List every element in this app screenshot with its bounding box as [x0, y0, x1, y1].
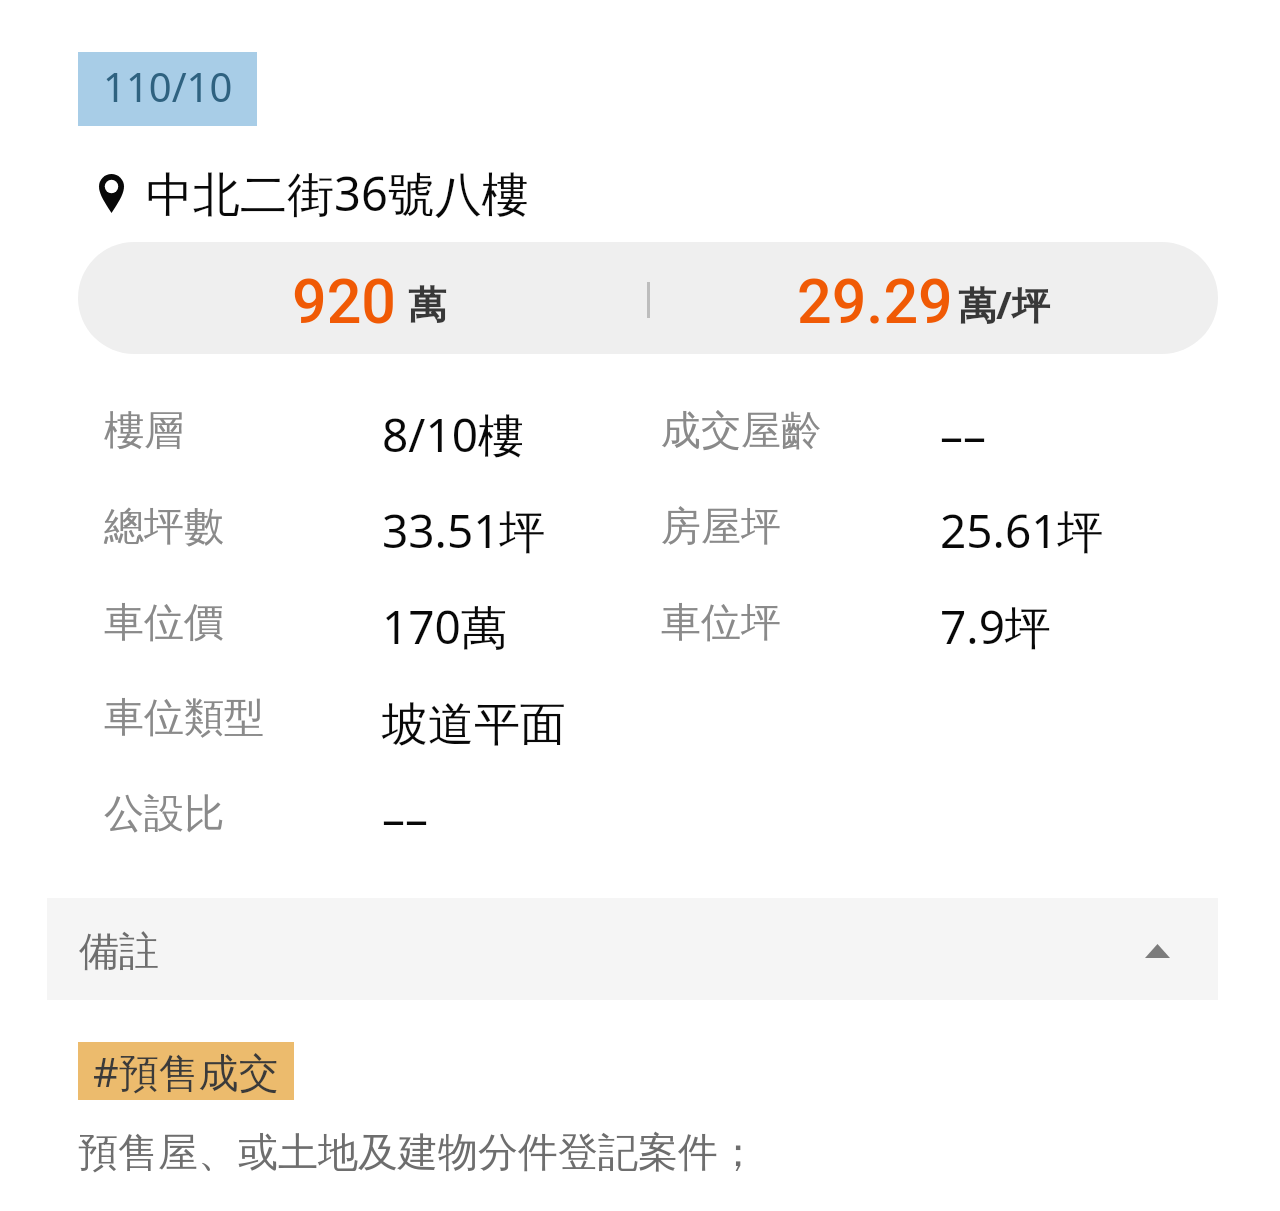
other: Location [99, 174, 124, 213]
staticText: 8/10樓 [382, 403, 525, 466]
button[interactable] [78, 242, 1218, 354]
staticText: –– [940, 403, 986, 466]
staticText: 坡道平面 [382, 696, 566, 754]
staticText: 房屋坪 [661, 501, 781, 551]
staticText: –– [382, 786, 428, 849]
button[interactable]: #預售成交 [78, 1042, 294, 1100]
staticText: 萬 [408, 281, 446, 329]
staticText: 樓層 [104, 405, 184, 455]
staticText: 25.61坪 [940, 499, 1104, 562]
staticText: 920 [292, 266, 397, 337]
staticText: 33.51坪 [382, 499, 546, 562]
staticText: 170萬 [382, 595, 507, 658]
other: Collapse remarks [1145, 944, 1170, 958]
staticText: 萬/坪 [958, 278, 1050, 330]
button[interactable]: 110/10 [78, 52, 257, 126]
staticText: 29.29 [797, 266, 953, 337]
staticText: 110/10 [103, 59, 233, 113]
button[interactable]: Location [92, 160, 542, 224]
staticText: 公設比 [104, 788, 224, 838]
staticText: 總坪數 [104, 501, 224, 551]
staticText: 中北二街36號八樓 [146, 161, 529, 225]
staticText: 車位類型 [104, 692, 264, 742]
staticText: 車位坪 [661, 597, 781, 647]
staticText: 備註 [79, 926, 159, 976]
staticText: 車位價 [104, 597, 224, 647]
staticText: 預售屋、或土地及建物分件登記案件； [78, 1127, 758, 1177]
staticText: 7.9坪 [940, 595, 1051, 658]
button[interactable]: 備註 [47, 898, 1218, 1000]
staticText: #預售成交 [93, 1044, 279, 1099]
staticText: 成交屋齡 [661, 405, 821, 455]
